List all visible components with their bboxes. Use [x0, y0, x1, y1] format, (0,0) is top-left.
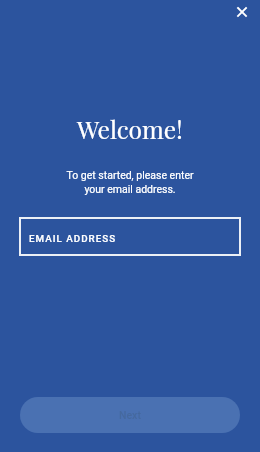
staticText: Welcome! [77, 112, 183, 145]
staticText: Next [119, 409, 141, 421]
button[interactable]: Next [20, 397, 240, 433]
staticText: To get started, please enter your email … [66, 169, 194, 196]
button[interactable]: Close [225, 0, 259, 29]
button[interactable]: EMAIL ADDRESS [19, 217, 241, 256]
staticText: EMAIL ADDRESS [29, 233, 117, 244]
